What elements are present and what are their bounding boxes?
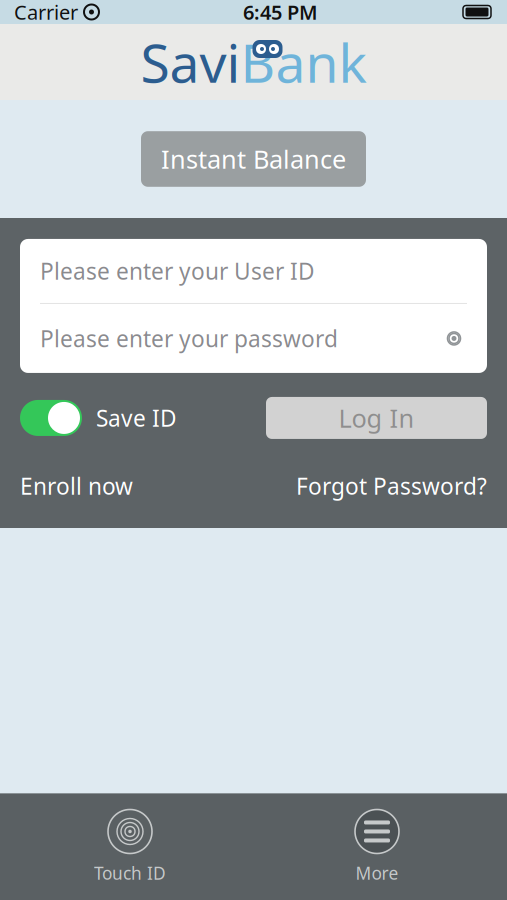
button[interactable]: Please enter your User ID bbox=[20, 239, 487, 303]
staticText: Carrier bbox=[14, 0, 78, 25]
staticText: Please enter your password bbox=[40, 323, 338, 353]
staticText: Enroll now bbox=[20, 471, 133, 501]
staticText: Bank bbox=[240, 27, 366, 97]
staticText: Log In bbox=[338, 401, 414, 435]
button[interactable]: Log In bbox=[266, 397, 487, 439]
staticText: More bbox=[355, 861, 398, 884]
staticText: 6:45 PM bbox=[243, 0, 318, 25]
staticText: Savi bbox=[140, 27, 240, 97]
staticText: Please enter your User ID bbox=[40, 256, 315, 286]
button[interactable]: Instant Balance bbox=[141, 131, 366, 187]
staticText: Touch ID bbox=[94, 861, 166, 884]
button[interactable]: Please enter your password bbox=[20, 304, 487, 373]
button[interactable]: More bbox=[317, 804, 437, 888]
button[interactable]: Touch ID bbox=[70, 804, 190, 888]
staticText: Instant Balance bbox=[161, 142, 346, 176]
staticText: Save ID bbox=[96, 403, 177, 433]
button[interactable]: Enroll now bbox=[20, 467, 133, 505]
staticText: Forgot Password? bbox=[296, 471, 487, 501]
button[interactable]: Forgot Password? bbox=[296, 467, 487, 505]
button[interactable]: Save ID bbox=[20, 400, 177, 436]
